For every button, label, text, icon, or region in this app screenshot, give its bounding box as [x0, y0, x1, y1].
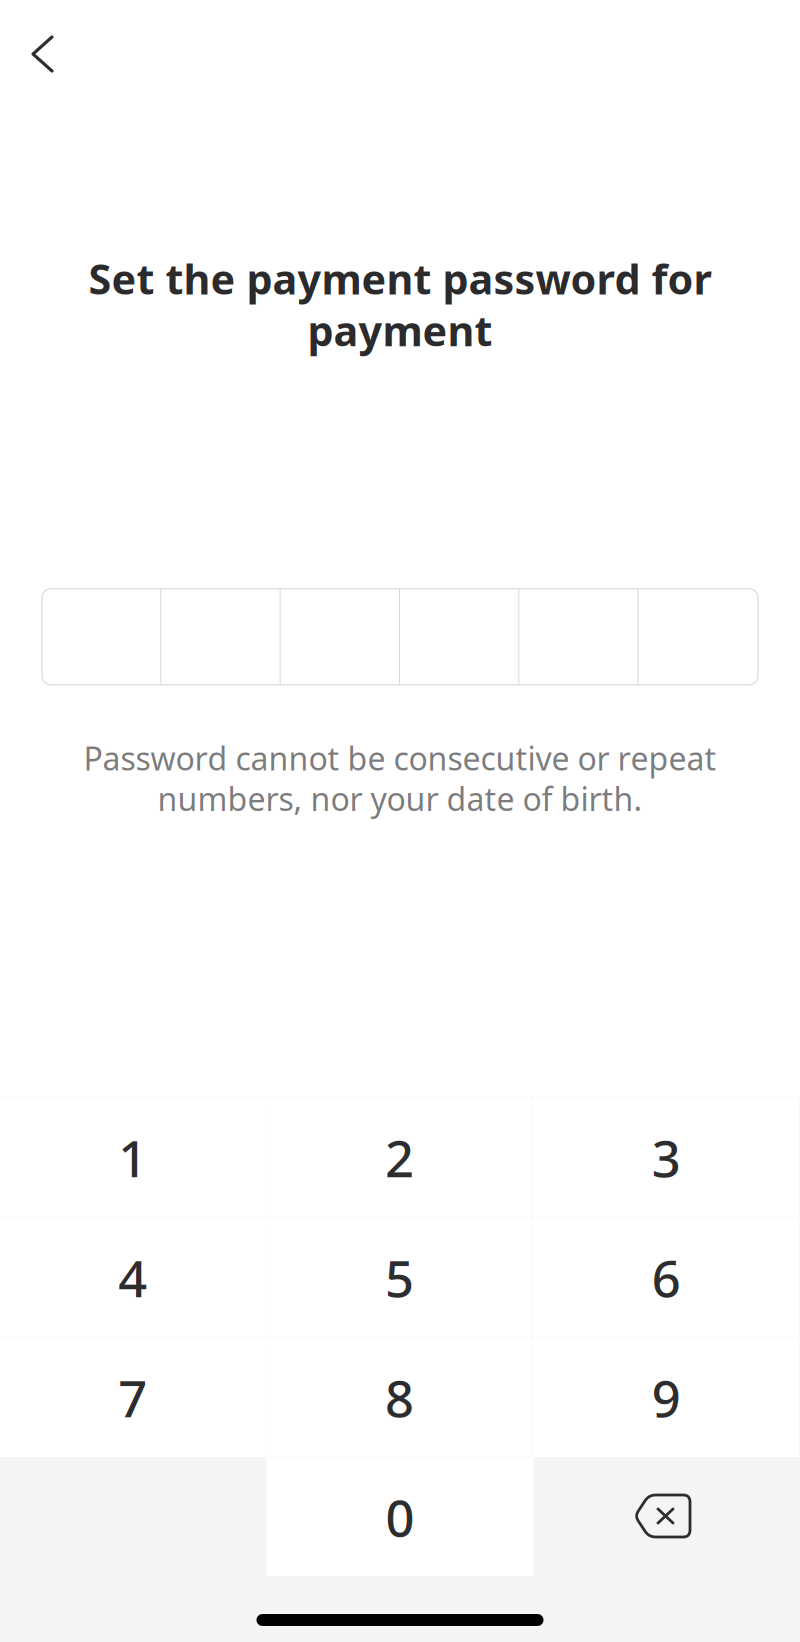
button[interactable]: 1: [0, 1098, 266, 1217]
staticText: Password cannot be consecutive or repeat: [83, 737, 716, 779]
staticText: 4: [118, 1244, 147, 1311]
staticText: numbers, nor your date of birth.: [157, 777, 642, 820]
staticText: 0: [385, 1483, 414, 1551]
button[interactable]: 0: [267, 1458, 533, 1576]
staticText: 5: [385, 1244, 414, 1311]
button[interactable]: 6: [533, 1218, 799, 1337]
staticText: 1: [118, 1124, 147, 1191]
button[interactable]: 4: [0, 1218, 266, 1337]
button[interactable]: 9: [533, 1338, 799, 1457]
button[interactable]: 8: [267, 1338, 532, 1457]
staticText: 8: [385, 1364, 414, 1431]
button[interactable]: 2: [267, 1098, 532, 1217]
staticText: 3: [652, 1124, 681, 1191]
button[interactable]: 3: [533, 1098, 799, 1217]
staticText: Set the payment password for: [88, 251, 711, 306]
button[interactable]: Delete: [533, 1457, 800, 1576]
staticText: 6: [652, 1244, 681, 1311]
button[interactable]: 7: [0, 1338, 266, 1457]
staticText: 7: [118, 1364, 147, 1431]
staticText: 9: [652, 1364, 681, 1431]
staticText: 2: [385, 1124, 414, 1191]
staticText: payment: [307, 303, 492, 358]
button[interactable]: 5: [267, 1218, 532, 1337]
button[interactable]: Back: [0, 23, 76, 85]
